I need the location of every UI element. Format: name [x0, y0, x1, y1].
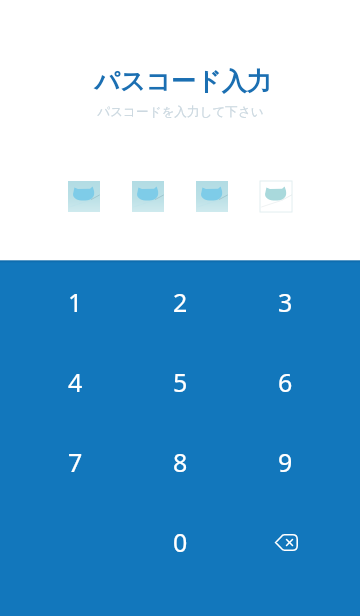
button[interactable]: 5: [128, 342, 233, 422]
staticText: 1: [68, 285, 83, 319]
staticText: 5: [173, 365, 188, 399]
button[interactable]: 3: [233, 262, 338, 342]
button[interactable]: Backspace: [233, 502, 338, 582]
staticText: 3: [278, 285, 293, 319]
staticText: 8: [173, 445, 188, 479]
button[interactable]: 9: [233, 422, 338, 502]
button[interactable]: 1: [22, 262, 128, 342]
button[interactable]: 6: [233, 342, 338, 422]
button[interactable]: 7: [22, 422, 128, 502]
button[interactable]: 2: [128, 262, 233, 342]
button[interactable]: 0: [128, 502, 233, 582]
staticText: 6: [278, 365, 293, 399]
staticText: 9: [278, 445, 293, 479]
staticText: パスコード入力: [94, 66, 272, 97]
staticText: パスコードを入力して下さい: [97, 104, 264, 120]
button[interactable]: 4: [22, 342, 128, 422]
button[interactable]: 8: [128, 422, 233, 502]
staticText: 4: [68, 365, 83, 399]
staticText: 0: [173, 525, 188, 559]
staticText: 2: [173, 285, 188, 319]
staticText: 7: [68, 445, 83, 479]
